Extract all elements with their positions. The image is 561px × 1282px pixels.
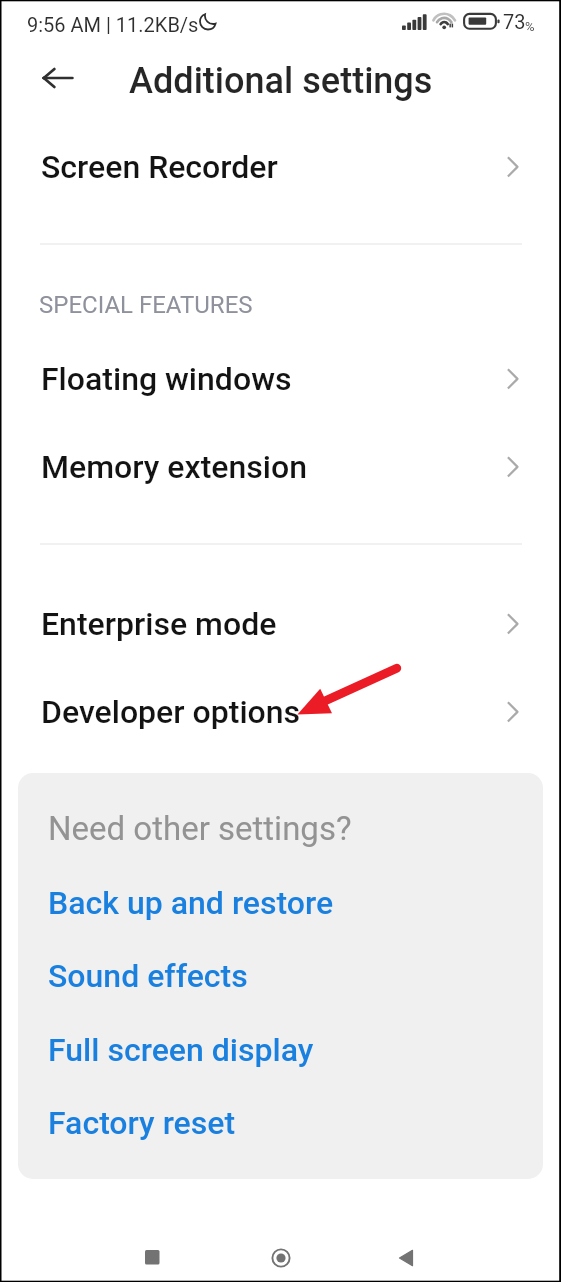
button[interactable]: Enterprise mode [0,592,561,680]
button[interactable]: Memory extension [0,435,561,523]
staticText: Sound effects [48,957,248,995]
staticText: Enterprise mode [41,605,277,643]
button[interactable]: Recent apps [127,1232,179,1282]
staticText: Additional settings [129,60,433,102]
button[interactable]: Home [255,1232,307,1282]
button[interactable]: Back [381,1232,433,1282]
staticText: Need other settings? [48,809,352,848]
staticText: Screen Recorder [41,148,278,186]
button[interactable]: Factory reset [18,1090,542,1148]
staticText: Factory reset [48,1104,236,1142]
staticText: 9:56 AM | 11.2KB/s [27,13,199,36]
staticText: Full screen display [48,1031,314,1069]
staticText: SPECIAL FEATURES [39,291,253,319]
button[interactable]: Back up and restore [18,870,542,928]
staticText: 73 [503,10,526,33]
staticText: Floating windows [41,360,292,398]
button[interactable]: Floating windows [0,347,561,435]
button[interactable]: Navigate up [35,54,83,102]
staticText: Back up and restore [48,884,334,922]
button[interactable]: Screen Recorder [0,135,561,223]
button[interactable]: Sound effects [18,943,542,1001]
staticText: % [525,19,535,34]
button[interactable]: Developer options [0,680,561,768]
staticText: Memory extension [41,448,307,486]
staticText: Developer options [41,693,301,731]
button[interactable]: Full screen display [18,1017,542,1075]
